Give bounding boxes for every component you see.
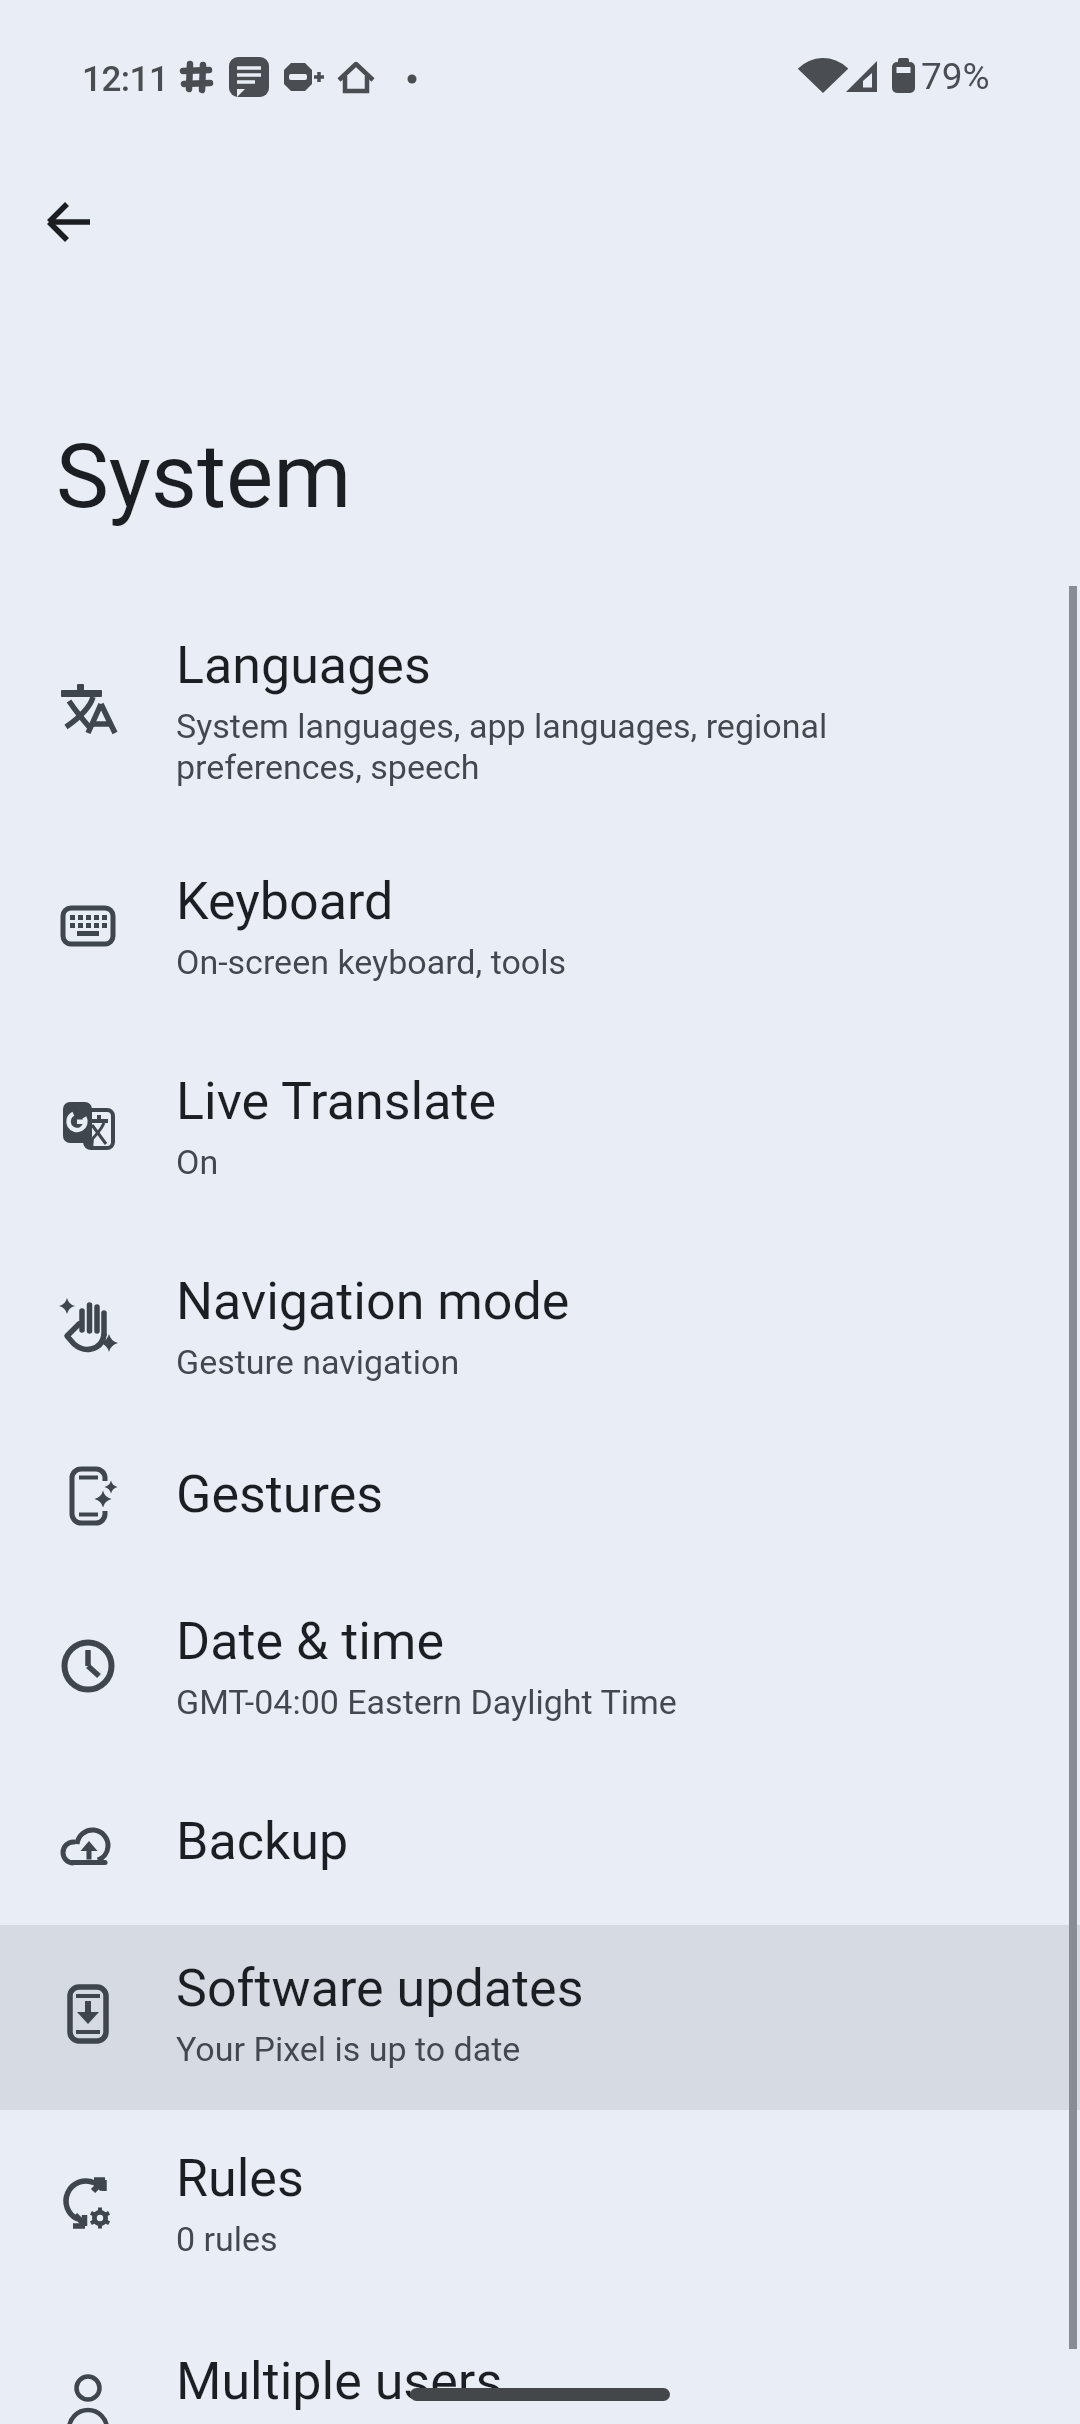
button[interactable]: Rules (0, 2110, 1080, 2305)
button[interactable]: Languages (0, 600, 1080, 830)
staticText: Gesture navigation (176, 1342, 460, 1382)
staticText: 0 rules (176, 2219, 278, 2259)
staticText: On-screen keyboard, tools (176, 942, 567, 982)
staticText: Gestures (176, 1464, 384, 1525)
button[interactable]: Date & time (0, 1570, 1080, 1770)
staticText: Navigation mode (176, 1271, 570, 1332)
staticText: Your Pixel is up to date (176, 2029, 521, 2069)
staticText: Multiple users (176, 2351, 503, 2412)
staticText: Keyboard (176, 871, 394, 932)
staticText: 12:11 (82, 59, 169, 100)
button[interactable]: Navigation mode (0, 1230, 1080, 1430)
staticText: Date & time (176, 1611, 444, 1672)
staticText: On (176, 1142, 219, 1182)
staticText: System (56, 424, 352, 528)
staticText: GMT-04:00 Eastern Daylight Time (176, 1682, 677, 1722)
staticText: Languages (176, 635, 431, 696)
staticText: Software updates (176, 1958, 584, 2019)
button[interactable]: Live Translate (0, 1030, 1080, 1230)
staticText: Rules (176, 2148, 304, 2209)
staticText: Backup (176, 1811, 349, 1872)
button[interactable]: Software updates (0, 1925, 1080, 2110)
button[interactable]: Gestures (0, 1430, 1080, 1570)
staticText: Live Translate (176, 1071, 497, 1132)
staticText: System languages, app languages, regiona… (176, 706, 828, 788)
button[interactable]: Multiple users (0, 2305, 1080, 2424)
button[interactable]: Backup (0, 1770, 1080, 1925)
button[interactable] (40, 192, 100, 252)
staticText: 79% (921, 55, 990, 98)
button[interactable]: Keyboard (0, 830, 1080, 1030)
